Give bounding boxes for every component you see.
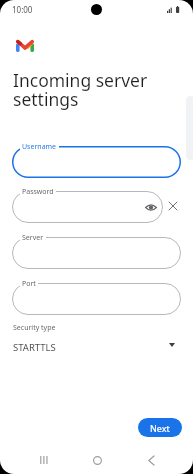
button[interactable]: Back <box>137 446 165 474</box>
staticText: 10:00 <box>12 4 33 15</box>
staticText: Next <box>150 422 170 434</box>
staticText: Server <box>22 233 44 243</box>
button[interactable] <box>12 237 181 269</box>
button[interactable] <box>12 283 181 315</box>
button[interactable]: Recent apps <box>30 446 58 474</box>
button[interactable] <box>12 146 181 178</box>
staticText: Username <box>22 142 57 152</box>
staticText: STARTTLS <box>13 341 56 354</box>
staticText: Incoming server settings <box>13 68 185 111</box>
button[interactable]: Next <box>138 418 182 437</box>
button[interactable] <box>12 191 163 223</box>
staticText: Password <box>22 187 54 197</box>
button[interactable]: Clear password <box>166 199 180 213</box>
staticText: Security type <box>13 323 56 333</box>
button[interactable]: Home <box>83 446 111 474</box>
staticText: Port <box>22 279 36 289</box>
button[interactable]: Security type <box>0 320 193 356</box>
